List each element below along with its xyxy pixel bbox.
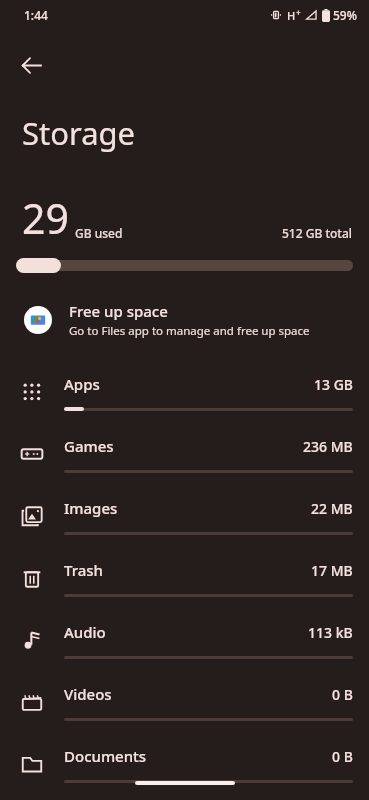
staticText: Audio — [64, 622, 106, 642]
staticText: 113 kB — [308, 623, 353, 642]
button[interactable]: Back — [8, 42, 54, 88]
staticText: Games — [64, 436, 114, 456]
staticText: Go to Files app to manage and free up sp… — [69, 323, 310, 339]
staticText: Storage — [22, 112, 136, 154]
button[interactable]: Games — [0, 423, 369, 485]
button[interactable]: Free up space — [0, 297, 369, 343]
staticText: 512 GB total — [282, 225, 353, 241]
staticText: 236 MB — [303, 437, 353, 456]
staticText: Documents — [64, 746, 147, 766]
staticText: Apps — [64, 374, 100, 394]
button[interactable]: Trash — [0, 547, 369, 609]
button[interactable]: Videos — [0, 671, 369, 733]
staticText: 0 B — [332, 747, 353, 766]
staticText: 22 MB — [311, 499, 353, 518]
staticText: H — [287, 8, 296, 23]
staticText: 17 MB — [311, 561, 353, 580]
staticText: Images — [64, 498, 118, 518]
staticText: + — [296, 7, 301, 18]
staticText: 0 B — [332, 685, 353, 704]
staticText: 1:44 — [24, 7, 48, 23]
staticText: Videos — [64, 684, 112, 704]
staticText: 13 GB — [314, 375, 353, 394]
button[interactable]: Audio — [0, 609, 369, 671]
button[interactable]: Documents — [0, 733, 369, 795]
staticText: Trash — [64, 560, 104, 580]
staticText: 29 — [22, 190, 69, 246]
button[interactable]: Apps — [0, 361, 369, 423]
staticText: Free up space — [69, 301, 168, 321]
staticText: 59% — [333, 7, 357, 23]
button[interactable]: Images — [0, 485, 369, 547]
staticText: GB used — [75, 225, 123, 241]
